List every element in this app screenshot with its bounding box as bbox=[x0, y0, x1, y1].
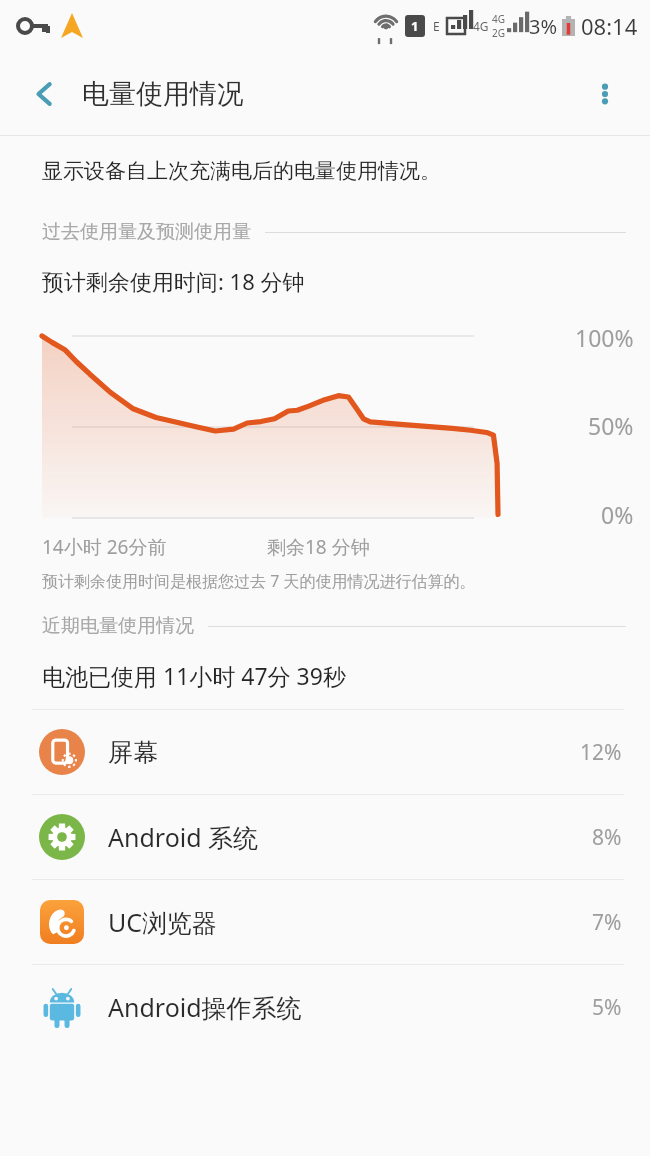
staticText: 1 bbox=[411, 17, 419, 35]
staticText: 100% bbox=[575, 322, 634, 353]
staticText: 屏幕 bbox=[108, 737, 158, 768]
staticText: 5% bbox=[592, 993, 622, 1022]
staticText: UC浏览器 bbox=[108, 905, 218, 939]
staticText: 12% bbox=[580, 738, 622, 767]
staticText: 0% bbox=[601, 499, 634, 530]
button[interactable]: Android 系统 bbox=[0, 795, 650, 879]
staticText: 2G bbox=[492, 26, 505, 40]
staticText: 显示设备自上次充满电后的电量使用情况。 bbox=[42, 158, 441, 184]
staticText: Android操作系统 bbox=[108, 990, 302, 1024]
staticText: 过去使用量及预测使用量 bbox=[42, 220, 251, 244]
staticText: 8% bbox=[592, 823, 622, 852]
staticText: 预计剩余使用时间: 18 分钟 bbox=[42, 266, 305, 296]
button[interactable]: More options bbox=[578, 67, 632, 121]
staticText: 4G bbox=[473, 18, 489, 34]
staticText: 电量使用情况 bbox=[82, 77, 244, 111]
staticText: 预计剩余使用时间是根据您过去 7 天的使用情况进行估算的。 bbox=[42, 570, 476, 592]
staticText: Android 系统 bbox=[108, 820, 259, 854]
staticText: 50% bbox=[588, 410, 634, 441]
button[interactable]: Android操作系统 bbox=[0, 965, 650, 1049]
staticText: 14小时 26分前 bbox=[42, 534, 167, 560]
staticText: 剩余18 分钟 bbox=[267, 534, 370, 560]
staticText: E bbox=[433, 18, 440, 34]
staticText: 08:14 bbox=[581, 11, 638, 41]
staticText: 3% bbox=[529, 13, 558, 40]
button[interactable]: 屏幕 bbox=[0, 710, 650, 794]
staticText: 7% bbox=[592, 908, 622, 937]
staticText: 近期电量使用情况 bbox=[42, 614, 194, 638]
staticText: 电池已使用 11小时 47分 39秒 bbox=[42, 660, 346, 691]
button[interactable]: Back bbox=[18, 67, 72, 121]
staticText: 4G bbox=[492, 12, 505, 26]
button[interactable]: UC浏览器 bbox=[0, 880, 650, 964]
